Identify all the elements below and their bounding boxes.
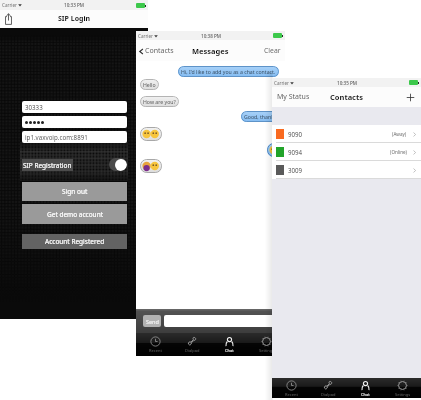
- staticText: Chat: [361, 392, 370, 397]
- button[interactable]: Share: [4, 13, 13, 25]
- button[interactable]: Clear: [264, 46, 281, 55]
- staticText: 9094: [288, 148, 303, 156]
- button[interactable]: Recent: [136, 333, 174, 356]
- staticText: Recent: [149, 348, 162, 353]
- staticText: 3009: [288, 166, 303, 174]
- staticText: Hi, I'd like to add you as a chat contac…: [181, 68, 276, 75]
- staticText: Carrier: [138, 33, 153, 39]
- button[interactable]: Chat: [211, 333, 248, 356]
- staticText: Carrier: [2, 2, 17, 8]
- staticText: (Away): [392, 131, 407, 137]
- staticText: Dialpad: [185, 348, 200, 353]
- staticText: Get demo account: [47, 210, 103, 219]
- button[interactable]: Contacts: [138, 46, 174, 56]
- staticText: Account Registered: [45, 237, 105, 246]
- button[interactable]: How are you?: [143, 98, 176, 105]
- staticText: (Online): [390, 149, 407, 155]
- button[interactable]: Sign out: [22, 182, 127, 201]
- button[interactable]: [267, 143, 289, 157]
- button[interactable]: ip1.vaxvoip.com:8891: [22, 131, 127, 143]
- button[interactable]: Add contact: [406, 93, 415, 102]
- button[interactable]: Recent: [272, 378, 310, 398]
- button[interactable]: 9090: [272, 125, 421, 143]
- button[interactable]: Settings: [248, 333, 285, 356]
- button[interactable]: [140, 159, 162, 173]
- staticText: Good, thank you. And you?: [244, 113, 310, 120]
- staticText: 30333: [25, 103, 43, 111]
- button[interactable]: Good, thank you. And you?: [244, 113, 310, 120]
- staticText: 10:35 PM: [337, 80, 357, 86]
- button[interactable]: [22, 116, 127, 128]
- staticText: 9090: [288, 130, 303, 138]
- staticText: SIP Registration: [23, 161, 72, 170]
- staticText: 10:33 PM: [64, 2, 84, 8]
- button[interactable]: Hello: [143, 81, 156, 88]
- button[interactable]: Settings: [384, 378, 421, 398]
- button[interactable]: Account Registered: [22, 234, 127, 249]
- button[interactable]: Dialpad: [310, 378, 347, 398]
- staticText: Clear: [264, 46, 281, 55]
- staticText: Sign out: [62, 187, 88, 196]
- button[interactable]: [109, 158, 127, 171]
- staticText: Contacts: [330, 92, 364, 102]
- staticText: Send: [146, 318, 159, 325]
- button[interactable]: 3009: [272, 161, 421, 179]
- staticText: Chat: [225, 348, 234, 353]
- staticText: Contacts: [145, 46, 174, 56]
- staticText: My Status: [277, 92, 310, 102]
- button[interactable]: Dialpad: [174, 333, 211, 356]
- staticText: Recent: [285, 392, 298, 397]
- button[interactable]: Get demo account: [22, 204, 127, 224]
- button[interactable]: My Status: [277, 92, 310, 102]
- staticText: How are you?: [143, 98, 176, 105]
- button[interactable]: [140, 127, 162, 141]
- staticText: Dialpad: [321, 392, 336, 397]
- button[interactable]: Hi, I'd like to add you as a chat contac…: [181, 68, 276, 75]
- button[interactable]: 30333: [22, 101, 127, 113]
- button[interactable]: Send: [143, 315, 161, 327]
- staticText: ip1.vaxvoip.com:8891: [25, 133, 88, 141]
- staticText: 10:38 PM: [201, 33, 221, 39]
- button[interactable]: Chat: [347, 378, 384, 398]
- staticText: SIP Login: [58, 14, 91, 24]
- button[interactable]: [164, 315, 285, 327]
- staticText: Messages: [192, 46, 229, 56]
- staticText: Settings: [395, 392, 411, 397]
- staticText: Settings: [259, 348, 275, 353]
- staticText: Carrier: [274, 80, 289, 86]
- staticText: Hello: [143, 81, 156, 88]
- button[interactable]: 9094: [272, 143, 421, 161]
